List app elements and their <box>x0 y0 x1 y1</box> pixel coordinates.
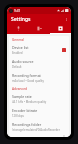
button[interactable]: Recording format <box>9 71 69 85</box>
button[interactable]: Encoder bitrate <box>9 106 69 120</box>
staticText: General <box>12 38 24 42</box>
staticText: Recording format <box>12 73 41 78</box>
staticText: 128 kbps <box>12 114 24 118</box>
button[interactable]: Recordings folder <box>9 120 69 134</box>
button[interactable]: Enabled toggle <box>62 48 66 52</box>
staticText: Audio source <box>12 59 34 64</box>
staticText: Settings <box>11 16 31 23</box>
staticText: 9:41 <box>14 9 21 13</box>
staticText: Encoder bitrate <box>12 108 38 113</box>
staticText: Recordings folder <box>12 122 42 127</box>
button[interactable]: Sample rate <box>9 92 69 106</box>
button[interactable]: More options <box>62 15 71 24</box>
staticText: /storage/emulated/0/AudioRecorder <box>12 128 60 132</box>
button[interactable]: Ask for filename <box>9 134 69 137</box>
staticText: Sample rate <box>12 94 32 99</box>
button[interactable]: Settings tab <box>50 24 71 33</box>
staticText: 44.1 kHz • Medium quality <box>12 100 47 104</box>
staticText: Default <box>12 65 22 69</box>
button[interactable]: Device list <box>9 43 69 57</box>
button[interactable]: Record tab <box>7 24 29 33</box>
button[interactable]: Export tab <box>29 24 50 33</box>
staticText: Advanced <box>12 87 27 91</box>
staticText: m4a (aac) • Good quality <box>12 79 44 83</box>
staticText: Device list <box>12 45 29 50</box>
button[interactable]: Audio source <box>9 57 69 71</box>
staticText: Enabled <box>12 51 23 55</box>
